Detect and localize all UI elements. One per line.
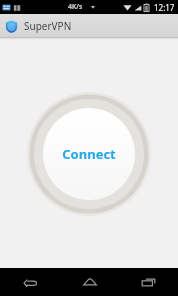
button[interactable]: Connect (27, 92, 151, 216)
staticText: 4K/s (68, 2, 83, 12)
button[interactable]: Home (60, 268, 119, 296)
staticText: SuperVPN (24, 19, 72, 33)
staticText: 12:17 (154, 2, 175, 13)
button[interactable]: Back (0, 268, 60, 296)
staticText: Connect (62, 145, 116, 163)
button[interactable]: Recent apps (119, 268, 178, 296)
